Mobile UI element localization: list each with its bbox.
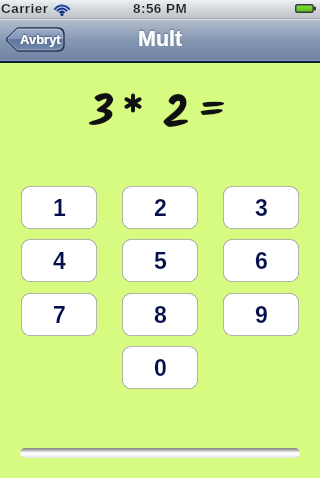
button[interactable]: 8 <box>122 293 198 336</box>
staticText: 8:56 PM <box>133 1 188 16</box>
staticText: 0 <box>154 355 167 381</box>
staticText: 8 <box>154 302 167 328</box>
staticText: 2 <box>163 79 190 152</box>
button[interactable]: Avbryt <box>5 27 65 52</box>
staticText: 6 <box>255 248 268 274</box>
staticText: 1 <box>53 195 66 221</box>
staticText: Avbryt <box>20 32 61 47</box>
button[interactable]: 7 <box>21 293 97 336</box>
button[interactable]: 5 <box>122 239 198 282</box>
staticText: Carrier <box>1 1 49 16</box>
staticText: 4 <box>53 248 66 274</box>
staticText: = <box>198 77 227 144</box>
staticText: 9 <box>255 302 268 328</box>
staticText: 3 <box>255 195 268 221</box>
button[interactable]: 1 <box>21 186 97 229</box>
button[interactable]: 3 <box>223 186 299 229</box>
button[interactable]: 0 <box>122 346 198 389</box>
staticText: 3 <box>90 79 115 149</box>
button[interactable]: 4 <box>21 239 97 282</box>
button[interactable]: 2 <box>122 186 198 229</box>
staticText: Mult <box>138 27 183 51</box>
staticText: 5 <box>154 248 167 274</box>
staticText: 7 <box>53 302 66 328</box>
staticText: 2 <box>154 195 167 221</box>
button[interactable]: 9 <box>223 293 299 336</box>
button[interactable]: 6 <box>223 239 299 282</box>
